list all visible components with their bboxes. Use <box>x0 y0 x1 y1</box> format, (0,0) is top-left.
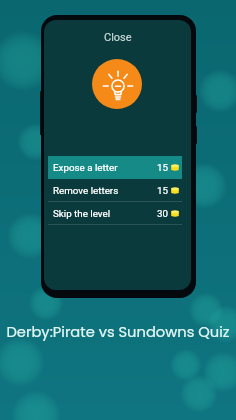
staticText: Derby:Pirate vs Sundowns Quiz <box>0 322 236 343</box>
button[interactable]: Remove letters <box>48 179 182 202</box>
button[interactable]: Expose a letter <box>48 156 182 179</box>
button[interactable]: Close <box>104 31 132 44</box>
staticText: 30 <box>157 208 169 219</box>
staticText: Expose a letter <box>53 162 118 173</box>
staticText: Skip the level <box>53 208 111 219</box>
button[interactable]: Skip the level <box>48 202 182 225</box>
button[interactable]: Hint <box>92 59 142 109</box>
staticText: Remove letters <box>53 185 119 196</box>
staticText: 15 <box>157 185 169 196</box>
staticText: 15 <box>157 162 169 173</box>
